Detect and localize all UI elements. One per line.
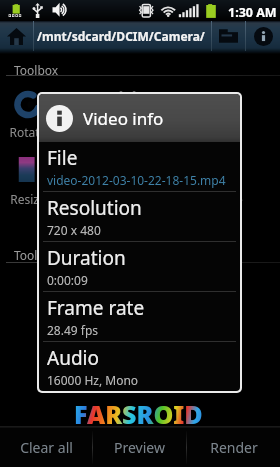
staticText: Toolbox: [14, 62, 59, 78]
staticText: 1:30 AM: [228, 4, 277, 21]
button[interactable]: Duration: [47, 242, 240, 291]
button[interactable]: [82, 86, 174, 138]
staticText: Toolbox: [14, 247, 59, 263]
button[interactable]: [0, 86, 74, 138]
button[interactable]: Info: [246, 21, 280, 51]
button[interactable]: File: [47, 142, 240, 191]
staticText: video-2012-03-10-22-18-15.mp4: [47, 172, 226, 188]
staticText: Resize: [0, 191, 69, 207]
staticText: Clear all: [20, 438, 73, 457]
staticText: Frame rate: [47, 295, 145, 321]
staticText: Split: [87, 191, 169, 207]
button[interactable]: Resolution: [47, 192, 240, 241]
button[interactable]: Preview: [93, 428, 186, 467]
staticText: Join: [187, 124, 269, 140]
staticText: Duration: [47, 245, 126, 271]
staticText: Rotate: [0, 124, 69, 140]
button[interactable]: Render: [187, 428, 280, 467]
button[interactable]: Home: [0, 21, 33, 51]
staticText: Video info: [83, 107, 164, 130]
staticText: FARSROID: [74, 397, 203, 431]
staticText: 0:00:09: [47, 272, 88, 288]
button[interactable]: [182, 86, 274, 138]
staticText: 720 x 480: [47, 222, 101, 238]
staticText: 28.49 fps: [47, 322, 99, 338]
button[interactable]: [0, 151, 74, 203]
staticText: 16000 Hz, Mono: [47, 372, 139, 388]
staticText: Trim: [87, 124, 169, 140]
staticText: Audio: [47, 345, 99, 371]
staticText: Render: [210, 438, 258, 457]
staticText: Preview: [114, 438, 165, 457]
staticText: Resolution: [47, 195, 142, 221]
button[interactable]: Audio: [47, 342, 240, 391]
button[interactable]: Frame rate: [47, 292, 240, 341]
staticText: /mnt/sdcard/DCIM/Camera/: [37, 28, 205, 44]
button[interactable]: Open folder: [212, 21, 245, 51]
button[interactable]: [182, 151, 274, 203]
staticText: File: [47, 145, 78, 171]
staticText: Mute: [187, 191, 269, 207]
button[interactable]: Clear all: [0, 428, 92, 467]
button[interactable]: [82, 151, 174, 203]
